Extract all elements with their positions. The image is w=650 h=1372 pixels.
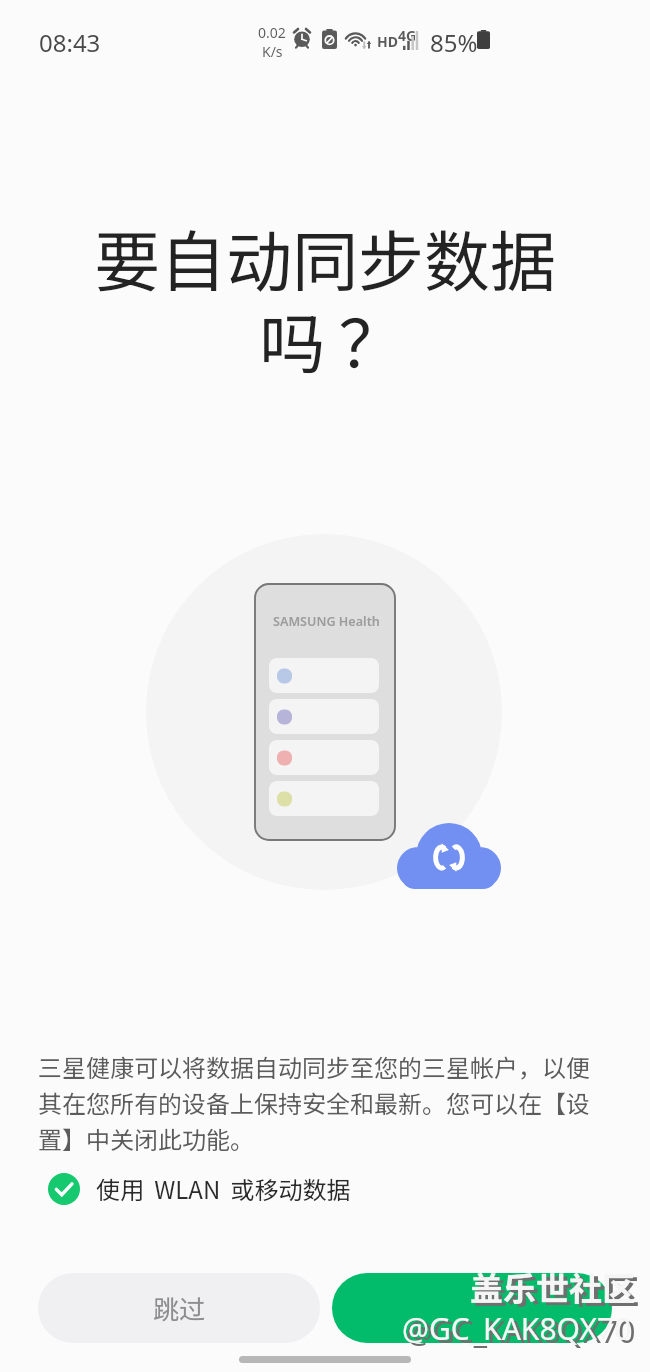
staticText: HD <box>377 32 398 51</box>
staticText: 4G <box>398 26 417 45</box>
staticText: 使用 WLAN 或移动数据 <box>96 1171 351 1206</box>
button[interactable]: 使用 WLAN 或移动数据 <box>33 1163 366 1214</box>
staticText: @GC_KAK8QX70 <box>402 1308 632 1349</box>
staticText: SAMSUNG Health <box>273 613 380 630</box>
staticText: K/s <box>262 42 283 61</box>
staticText: 盖乐世社区 <box>470 1263 635 1311</box>
staticText: 吗 ？ <box>14 291 650 387</box>
staticText: 三星健康可以将数据自动同步至您的三星帐户，以便其在您所有的设备上保持安全和最新。… <box>38 1049 612 1156</box>
staticText: 盖乐世社区 <box>474 1266 639 1314</box>
staticText: 要自动同步数据 <box>0 209 650 305</box>
button[interactable]: 继续 <box>332 1273 612 1343</box>
button[interactable]: 跳过 <box>38 1273 320 1343</box>
staticText: @GC_KAK8QX70 <box>406 1311 636 1352</box>
staticText: 85% <box>430 26 478 59</box>
staticText: 08:43 <box>39 26 101 59</box>
staticText: 跳过 <box>153 1289 206 1327</box>
staticText: 0.02 <box>258 23 286 42</box>
